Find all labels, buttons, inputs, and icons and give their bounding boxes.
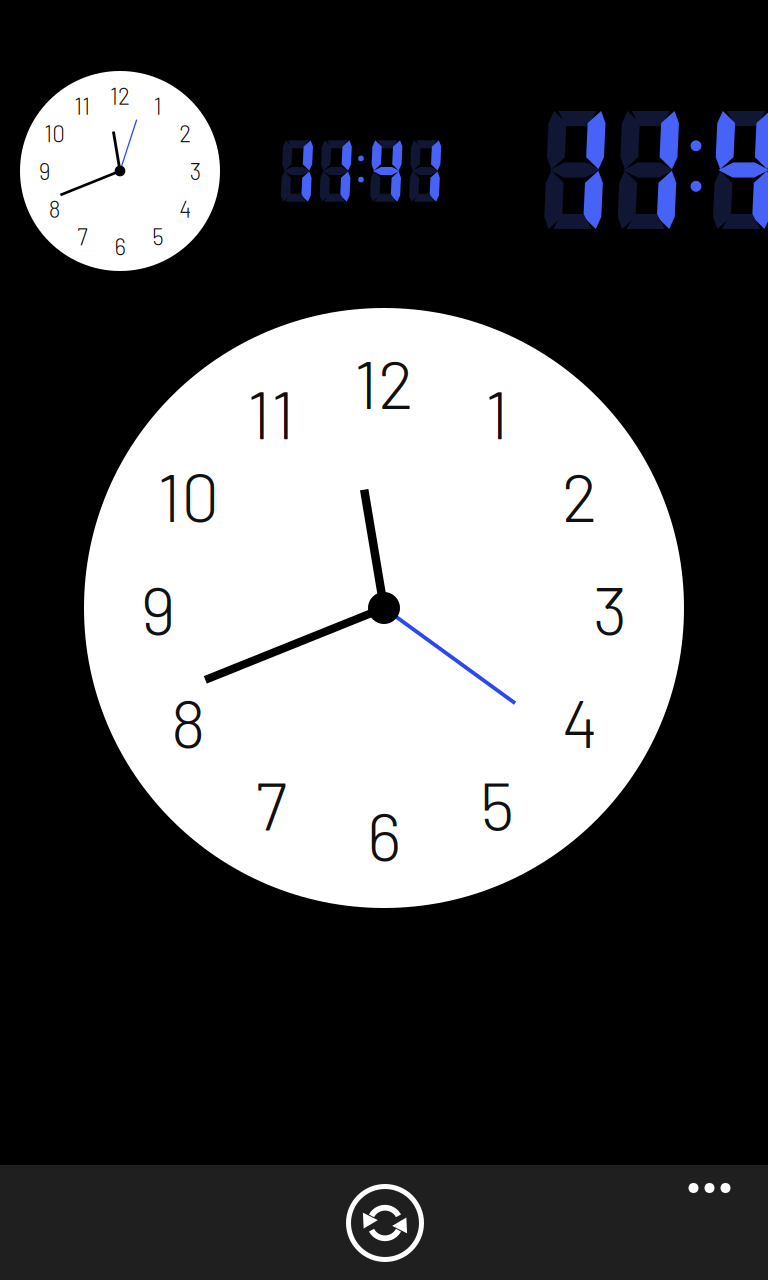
button[interactable]: Refresh — [337, 1175, 433, 1271]
staticText: 5 — [480, 763, 514, 844]
staticText: 8 — [49, 195, 61, 222]
staticText: 7 — [256, 763, 287, 844]
staticText: 4 — [179, 195, 191, 222]
staticText: 10 — [157, 455, 219, 535]
staticText: 3 — [190, 157, 201, 184]
staticText: 5 — [152, 223, 163, 250]
staticText: 4 — [562, 680, 598, 761]
staticText: 2 — [179, 120, 191, 147]
staticText: 1 — [485, 372, 509, 453]
staticText: 6 — [367, 793, 401, 874]
staticText: 9 — [141, 567, 176, 648]
staticText: 11 — [74, 92, 90, 119]
staticText: 11 — [247, 372, 295, 453]
staticText: 6 — [114, 233, 125, 260]
staticText: 3 — [593, 567, 627, 648]
staticText: 12 — [110, 82, 130, 109]
staticText: 12 — [354, 342, 414, 422]
staticText: 1 — [154, 92, 162, 119]
staticText: 10 — [44, 120, 65, 147]
staticText: 8 — [171, 680, 206, 761]
button[interactable]: More options — [673, 1165, 745, 1211]
staticText: 7 — [77, 223, 87, 250]
staticText: 2 — [562, 455, 598, 535]
staticText: 9 — [39, 157, 51, 184]
